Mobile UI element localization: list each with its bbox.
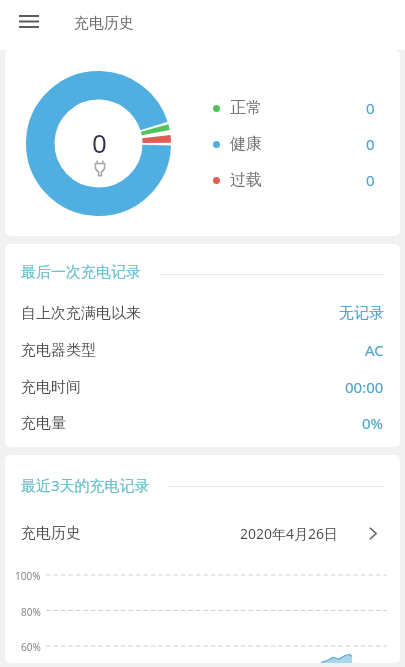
staticText: 2020年4月26日 xyxy=(240,524,339,543)
button[interactable]: 充电量 xyxy=(5,405,400,441)
button[interactable]: 充电器类型 xyxy=(5,332,400,368)
staticText: 最后一次充电记录 xyxy=(21,263,141,282)
staticText: 无记录 xyxy=(339,304,384,323)
button[interactable]: 自上次充满电以来 xyxy=(5,295,400,331)
staticText: 充电时间 xyxy=(21,378,81,397)
staticText: 充电历史 xyxy=(21,524,81,543)
staticText: 充电量 xyxy=(21,414,66,433)
staticText: 0 xyxy=(366,170,375,190)
staticText: 0 xyxy=(92,125,107,160)
staticText: 0% xyxy=(362,413,384,433)
staticText: 自上次充满电以来 xyxy=(21,304,141,323)
staticText: 0 xyxy=(366,134,375,154)
button[interactable]: 充电历史 xyxy=(5,511,400,555)
staticText: AC xyxy=(365,340,384,360)
staticText: 60% xyxy=(21,640,41,654)
staticText: 过载 xyxy=(230,170,262,190)
staticText: 0 xyxy=(366,98,375,118)
button[interactable]: Menu xyxy=(9,1,49,41)
staticText: 充电历史 xyxy=(74,14,134,33)
staticText: 充电器类型 xyxy=(21,341,96,360)
staticText: 100% xyxy=(15,569,41,583)
staticText: 最近3天的充电记录 xyxy=(21,475,150,495)
staticText: 正常 xyxy=(230,98,262,118)
staticText: 80% xyxy=(21,605,41,619)
staticText: 00:00 xyxy=(345,377,384,397)
staticText: 健康 xyxy=(230,134,262,154)
button[interactable]: 充电时间 xyxy=(5,369,400,405)
